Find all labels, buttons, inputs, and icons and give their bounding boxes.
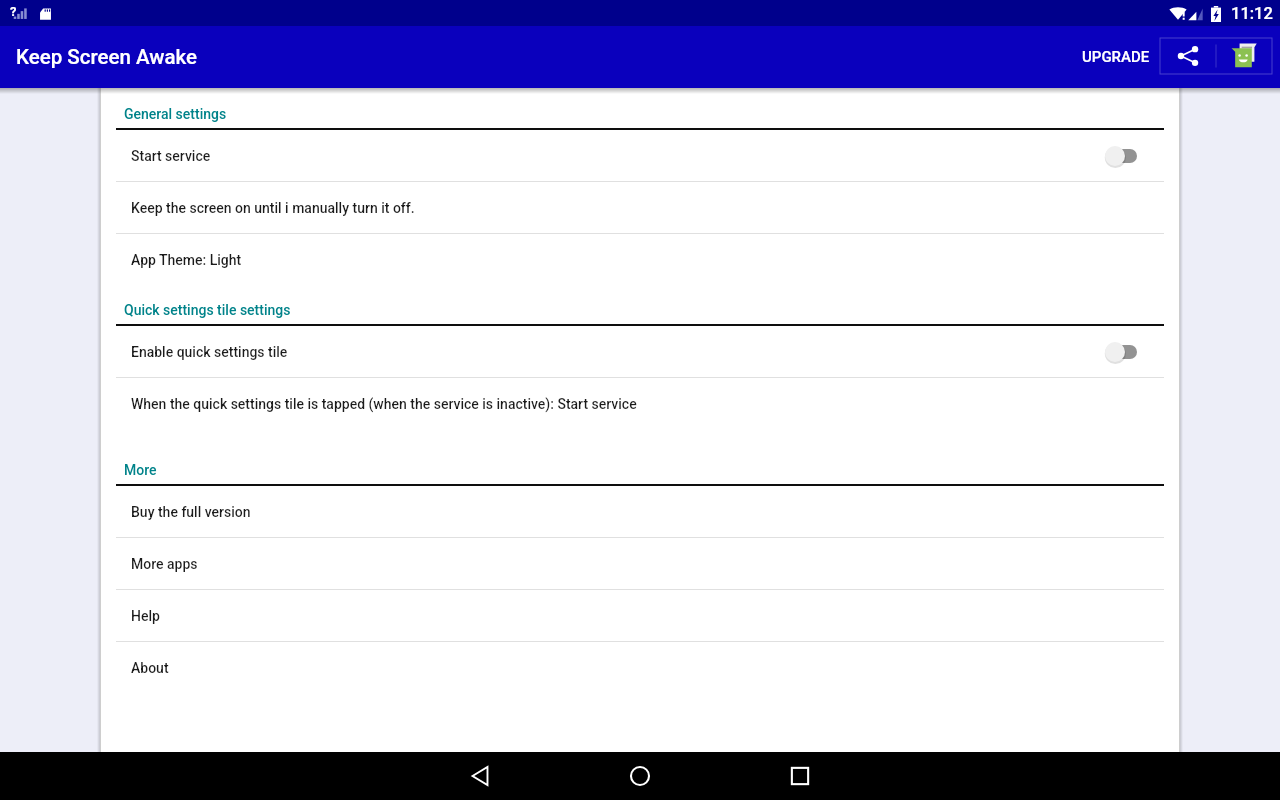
staticText: Keep the screen on until i manually turn… [131, 200, 415, 216]
staticText: Quick settings tile settings [124, 302, 291, 318]
button[interactable]: Toggle Enable quick settings tile [1095, 330, 1147, 374]
staticText: When the quick settings tile is tapped (… [131, 396, 637, 412]
staticText: ? [10, 4, 17, 19]
staticText: General settings [124, 106, 227, 122]
button[interactable]: Toggle Start service [1095, 134, 1147, 178]
staticText: 11:12 [1231, 4, 1273, 23]
staticText: UPGRADE [1082, 48, 1150, 66]
button[interactable]: Share [1160, 38, 1216, 74]
button[interactable]: When the quick settings tile is tapped (… [100, 378, 1180, 429]
staticText: Start service [131, 148, 211, 164]
staticText: More [124, 462, 157, 478]
button[interactable]: More apps [100, 538, 1180, 589]
button[interactable]: UPGRADE [1070, 36, 1162, 78]
button[interactable]: Enable quick settings tile [100, 326, 1180, 377]
button[interactable]: About [100, 642, 1180, 693]
button[interactable]: Messages [1216, 38, 1272, 74]
staticText: Buy the full version [131, 504, 251, 520]
button[interactable]: Recents [720, 752, 880, 800]
staticText: Keep Screen Awake [16, 45, 197, 69]
button[interactable]: Keep the screen on until i manually turn… [100, 182, 1180, 233]
staticText: Enable quick settings tile [131, 344, 288, 360]
button[interactable]: Home [560, 752, 720, 800]
button[interactable]: Back [400, 752, 560, 800]
button[interactable]: Buy the full version [100, 486, 1180, 537]
button[interactable]: Help [100, 590, 1180, 641]
staticText: Help [131, 608, 160, 624]
button[interactable]: Start service [100, 130, 1180, 181]
staticText: About [131, 660, 169, 676]
staticText: App Theme: Light [131, 252, 242, 268]
staticText: More apps [131, 556, 198, 572]
button[interactable]: App Theme: Light [100, 234, 1180, 285]
